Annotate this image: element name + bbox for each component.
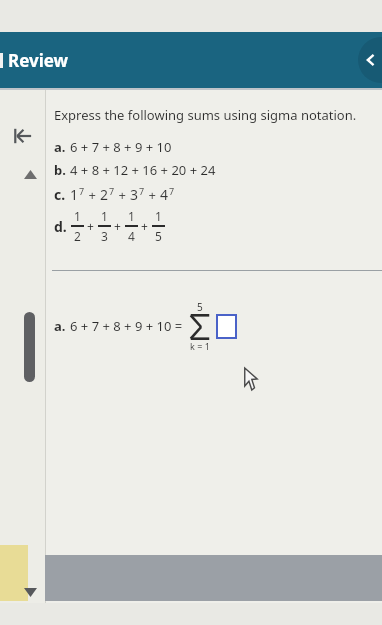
- staticText: a.: [54, 317, 66, 335]
- button[interactable]: Go to first page: [4, 118, 40, 154]
- staticText: 1: [70, 185, 79, 204]
- staticText: 1: [155, 208, 162, 224]
- button[interactable]: Scroll down: [18, 582, 42, 602]
- button[interactable]: Scroll up: [18, 164, 42, 184]
- staticText: Review: [8, 49, 69, 72]
- staticText: 6 + 7 + 8 + 9 + 10: [70, 138, 172, 156]
- staticText: +: [111, 218, 125, 234]
- staticText: +: [115, 186, 130, 204]
- staticText: 6 + 7 + 8 + 9 + 10 =: [70, 317, 183, 335]
- staticText: c.: [54, 185, 66, 204]
- staticText: 1: [128, 208, 135, 224]
- staticText: k = 1: [190, 340, 210, 352]
- staticText: 1: [74, 208, 81, 224]
- staticText: Express the following sums using sigma n…: [54, 106, 357, 124]
- button[interactable]: Answer field: [216, 314, 237, 339]
- staticText: 3: [130, 185, 139, 204]
- button[interactable]: Next: [358, 37, 382, 83]
- staticText: 7: [169, 185, 175, 197]
- staticText: d.: [54, 217, 67, 236]
- staticText: a.: [54, 138, 66, 156]
- staticText: +: [85, 186, 100, 204]
- staticText: 7: [109, 185, 115, 197]
- staticText: 5: [197, 300, 203, 314]
- staticText: b.: [54, 161, 66, 179]
- staticText: +: [145, 186, 160, 204]
- staticText: 2: [74, 228, 81, 244]
- staticText: 4 + 8 + 12 + 16 + 20 + 24: [70, 161, 216, 179]
- staticText: 4: [128, 228, 135, 244]
- staticText: 5: [155, 228, 162, 244]
- staticText: 2: [100, 185, 109, 204]
- button[interactable]: Scrollbar: [24, 312, 35, 382]
- staticText: +: [84, 218, 98, 234]
- staticText: 1: [101, 208, 108, 224]
- staticText: +: [138, 218, 152, 234]
- staticText: 4: [160, 185, 169, 204]
- staticText: 7: [79, 185, 85, 197]
- staticText: 7: [139, 185, 145, 197]
- staticText: 3: [101, 228, 108, 244]
